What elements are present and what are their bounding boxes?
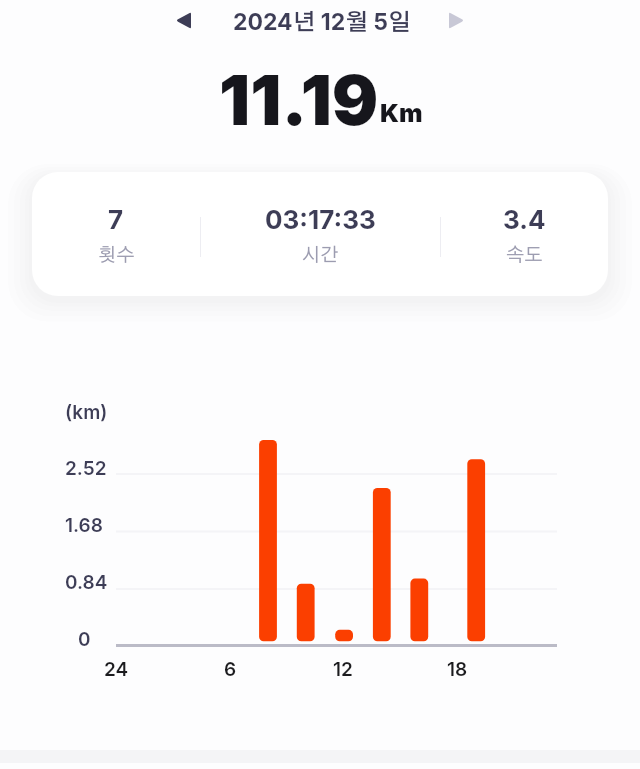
staticText: 횟수 bbox=[98, 246, 135, 265]
button[interactable]: 03:17:33 bbox=[204, 172, 436, 296]
staticText: 18 bbox=[447, 658, 468, 681]
staticText: 03:17:33 bbox=[265, 204, 376, 235]
staticText: (km) bbox=[65, 401, 108, 424]
staticText: 0 bbox=[78, 628, 91, 651]
staticText: 12 bbox=[333, 658, 353, 681]
button[interactable]: Next day bbox=[436, 0, 476, 40]
staticText: 7 bbox=[108, 204, 124, 235]
staticText: 2024년 12월 5일 bbox=[233, 8, 411, 36]
staticText: 시간 bbox=[302, 246, 339, 265]
staticText: 3.4 bbox=[503, 204, 546, 235]
staticText: 1.68 bbox=[65, 514, 103, 537]
staticText: 속도 bbox=[506, 246, 543, 265]
staticText: 11.19 bbox=[219, 58, 379, 141]
button[interactable]: Previous day bbox=[163, 0, 203, 40]
staticText: 24 bbox=[104, 658, 129, 681]
button[interactable]: 3.4 bbox=[440, 172, 608, 296]
staticText: 6 bbox=[224, 658, 237, 681]
staticText: 2.52 bbox=[65, 457, 107, 480]
staticText: 0.84 bbox=[65, 571, 108, 594]
staticText: Km bbox=[380, 98, 423, 128]
button[interactable]: 7 bbox=[32, 172, 200, 296]
